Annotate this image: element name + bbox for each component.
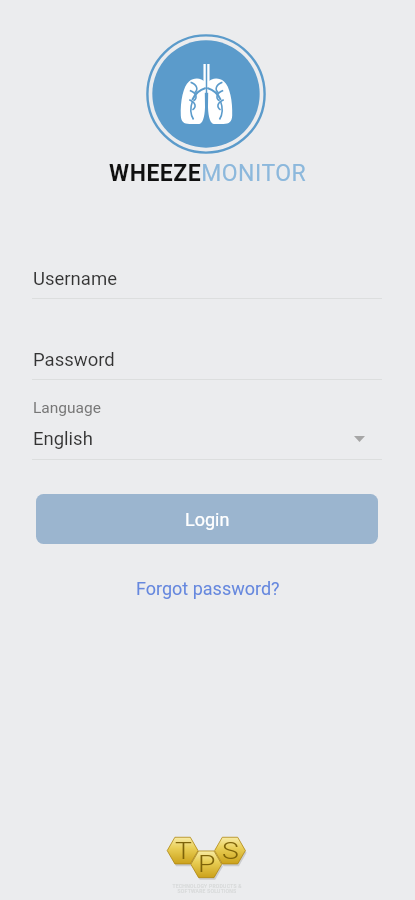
button[interactable]: Username: [33, 259, 383, 299]
button[interactable]: Language: [33, 399, 383, 451]
staticText: Password: [33, 349, 115, 371]
staticText: S: [222, 837, 239, 866]
staticText: Login: [185, 509, 230, 530]
staticText: T: [175, 837, 192, 866]
button[interactable]: Password: [33, 340, 383, 380]
staticText: Language: [33, 399, 101, 417]
staticText: P: [198, 850, 215, 879]
staticText: Username: [33, 268, 117, 290]
staticText: TECHNOLOGY PRODUCTS & SOFTWARE SOLUTIONS: [172, 883, 242, 895]
button[interactable]: Forgot password?: [128, 575, 288, 602]
button[interactable]: Login: [36, 494, 378, 544]
staticText: WHEEZEMONITOR: [109, 160, 307, 187]
staticText: English: [33, 428, 93, 450]
staticText: Forgot password?: [136, 578, 280, 599]
